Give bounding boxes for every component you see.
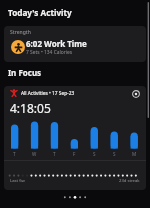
staticText: W	[32, 151, 37, 157]
button[interactable]: Focus target	[130, 88, 142, 100]
staticText: S	[113, 151, 116, 157]
staticText: F	[73, 151, 76, 157]
staticText: Last 6w	[10, 178, 25, 184]
staticText: Today's Activity	[8, 7, 72, 18]
staticText: 23d streak	[119, 178, 140, 184]
staticText: 4:18:05	[10, 100, 51, 116]
staticText: All Activities • 17 Sep-23	[21, 90, 75, 97]
staticText: T	[13, 151, 16, 157]
staticText: 6:02 Work Time	[26, 38, 87, 49]
staticText: T	[53, 151, 56, 157]
staticText: S	[93, 151, 96, 157]
staticText: In Focus	[8, 67, 42, 78]
staticText: 7 Sets • 134 Calories	[26, 49, 73, 56]
staticText: Strength	[10, 29, 31, 36]
button[interactable]: Strength	[4, 26, 146, 62]
staticText: M	[132, 151, 137, 157]
